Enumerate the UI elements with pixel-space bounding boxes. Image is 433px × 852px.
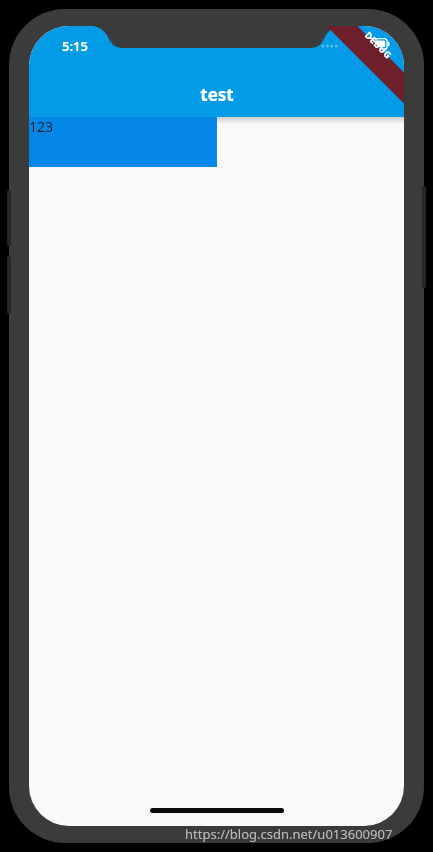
staticText: 123 — [29, 117, 54, 136]
button[interactable]: 123 — [29, 117, 217, 167]
staticText: test — [200, 83, 234, 106]
other: Status icons — [321, 36, 395, 52]
staticText: DEBUG — [363, 29, 395, 61]
staticText: https://blog.csdn.net/u013600907 — [185, 825, 393, 843]
staticText: 5:15 — [62, 37, 88, 55]
